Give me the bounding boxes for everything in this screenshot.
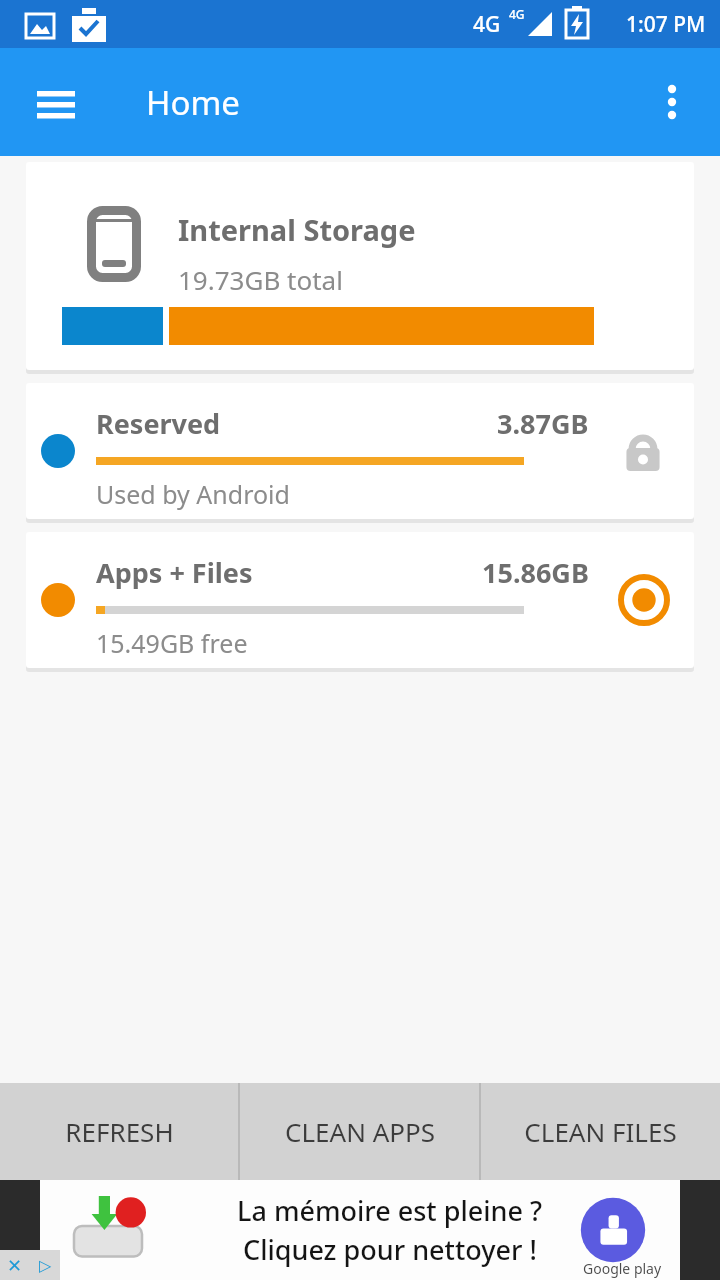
staticText: CLEAN FILES [524,1114,677,1149]
staticText: 4G [509,6,525,22]
staticText: Apps + Files [96,554,253,591]
staticText: 1:07 PM [626,10,706,39]
other: Locked [620,428,666,474]
button[interactable]: More options [638,68,706,136]
staticText: 15.49GB free [96,626,248,660]
button[interactable]: Reserved [26,383,694,519]
button[interactable]: Select Apps and Files [618,574,670,626]
staticText: 19.73GB total [178,262,343,297]
staticText: Reserved [96,405,221,442]
button[interactable]: Open navigation drawer [18,64,94,140]
staticText: Home [146,80,240,125]
staticText: CLEAN APPS [285,1114,435,1149]
button[interactable]: Internal Storage [26,162,694,370]
staticText: 4G [473,10,501,39]
staticText: Google play [583,1259,662,1278]
staticText: Internal Storage [178,210,416,249]
staticText: REFRESH [65,1114,174,1149]
staticText: Used by Android [96,477,290,511]
button[interactable]: La mémoire est pleine ? [40,1180,680,1280]
button[interactable]: Close ad [0,1250,30,1280]
staticText: ✕ [7,1255,23,1276]
staticText: Cliquez pour nettoyer ! [243,1231,537,1268]
staticText: ▷ [39,1256,52,1275]
staticText: 15.86GB [482,554,589,591]
staticText: 3.87GB [497,405,589,442]
button[interactable]: Apps + Files [26,532,694,668]
button[interactable]: CLEAN FILES [481,1083,720,1180]
button[interactable]: CLEAN APPS [240,1083,479,1180]
button[interactable]: REFRESH [0,1083,238,1180]
staticText: La mémoire est pleine ? [237,1192,543,1229]
